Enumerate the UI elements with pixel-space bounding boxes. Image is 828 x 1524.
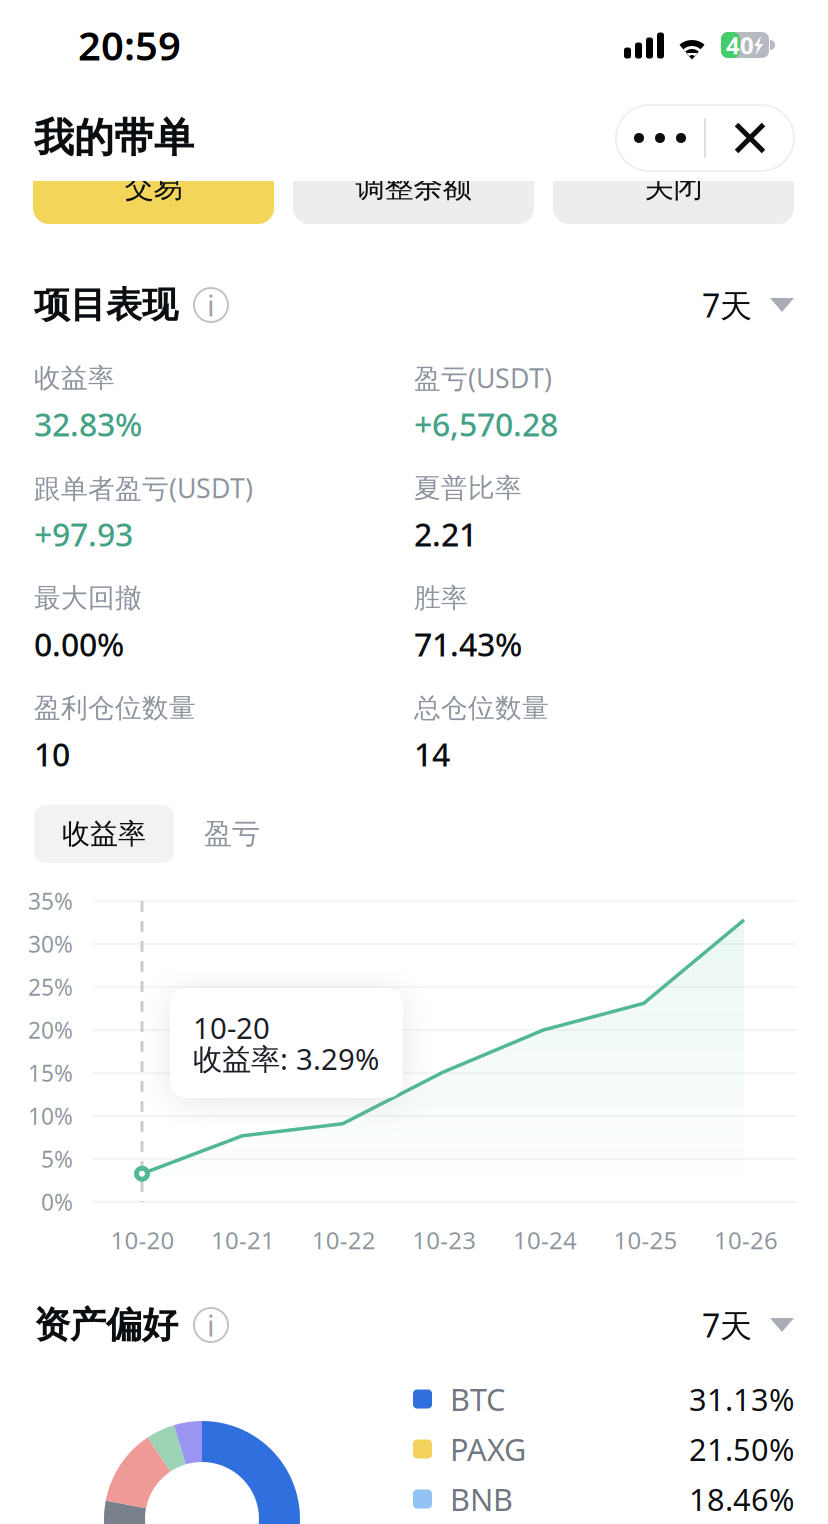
staticText: 0.00% [34, 623, 124, 665]
staticText: 10-22 [312, 1224, 376, 1256]
button[interactable]: 交易 [33, 150, 274, 224]
staticText: i [207, 1305, 215, 1344]
staticText: +6,570.28 [414, 403, 558, 445]
staticText: 资产偏好 [34, 1303, 178, 1347]
staticText: 夏普比率 [414, 472, 522, 504]
staticText: 10% [28, 1101, 73, 1131]
staticText: 15% [28, 1058, 73, 1088]
staticText: 收益率 [62, 817, 146, 851]
staticText: 25% [28, 972, 73, 1002]
button[interactable]: 7天 [702, 1304, 794, 1346]
staticText: BTC [450, 1379, 505, 1419]
staticText: 10 [34, 733, 70, 775]
staticText: 71.43% [414, 623, 522, 665]
staticText: 总仓位数量 [414, 692, 549, 724]
staticText: 调整余额 [355, 169, 471, 205]
button[interactable]: More options and close [616, 105, 794, 171]
button[interactable]: 调整余额 [293, 150, 534, 224]
staticText: 盈亏(USDT) [414, 360, 552, 396]
button[interactable]: 关闭 [553, 150, 794, 224]
staticText: 0% [41, 1187, 73, 1217]
staticText: 21.50% [689, 1429, 794, 1469]
staticText: 18.46% [689, 1479, 794, 1519]
staticText: 35% [28, 886, 73, 916]
staticText: 交易 [124, 169, 182, 205]
staticText: 14 [414, 733, 450, 775]
staticText: 5% [41, 1144, 73, 1174]
staticText: 我的带单 [34, 113, 194, 162]
staticText: 30% [28, 929, 73, 959]
staticText: 40 [726, 29, 754, 61]
staticText: +97.93 [34, 513, 133, 555]
staticText: 收益率 [34, 362, 115, 394]
staticText: 盈亏 [204, 817, 260, 851]
staticText: 32.83% [34, 403, 142, 445]
staticText: BNB [450, 1479, 513, 1519]
staticText: 20:59 [78, 18, 181, 71]
staticText: 跟单者盈亏(USDT) [34, 470, 253, 506]
staticText: 收益率: 3.29% [193, 1039, 379, 1078]
staticText: 2.21 [414, 513, 477, 555]
staticText: 关闭 [644, 169, 702, 205]
staticText: i [207, 285, 215, 324]
staticText: 7天 [702, 1304, 752, 1346]
staticText: 10-20 [193, 1008, 270, 1047]
staticText: PAXG [450, 1429, 526, 1469]
staticText: 盈利仓位数量 [34, 692, 196, 724]
button[interactable]: 收益率 [34, 805, 174, 863]
staticText: 最大回撤 [34, 582, 142, 614]
staticText: 10-25 [613, 1224, 677, 1256]
staticText: 项目表现 [34, 283, 178, 327]
staticText: 10-20 [110, 1224, 174, 1256]
staticText: 10-26 [714, 1224, 778, 1256]
staticText: 7天 [702, 284, 752, 326]
staticText: 10-23 [412, 1224, 476, 1256]
staticText: 31.13% [689, 1379, 794, 1419]
staticText: 10-24 [513, 1224, 577, 1256]
button[interactable]: 7天 [702, 284, 794, 326]
staticText: 20% [28, 1015, 73, 1045]
staticText: 胜率 [414, 582, 468, 614]
button[interactable]: 盈亏 [180, 805, 284, 863]
staticText: 10-21 [211, 1224, 275, 1256]
